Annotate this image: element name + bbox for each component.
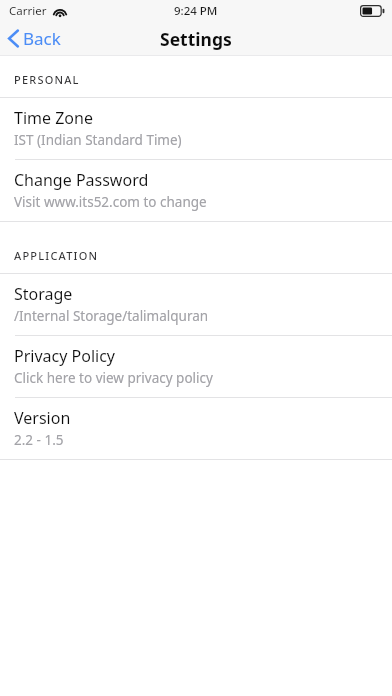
button[interactable]: Change Password	[0, 160, 392, 221]
staticText: IST (Indian Standard Time)	[14, 131, 182, 149]
staticText: 2.2 - 1.5	[14, 431, 64, 449]
staticText: Change Password	[14, 169, 149, 191]
button[interactable]: Back	[0, 22, 73, 55]
staticText: Visit www.its52.com to change	[14, 193, 207, 211]
staticText: Settings	[160, 27, 232, 51]
button[interactable]: Storage	[0, 274, 392, 335]
staticText: Privacy Policy	[14, 345, 115, 367]
staticText: Storage	[14, 283, 73, 305]
button[interactable]: Time Zone	[0, 98, 392, 159]
staticText: Click here to view privacy policy	[14, 369, 213, 387]
other: Battery	[360, 5, 385, 17]
button[interactable]: Privacy Policy	[0, 336, 392, 397]
staticText: Time Zone	[14, 107, 93, 129]
staticText: Carrier	[9, 3, 47, 19]
other: Back	[8, 29, 19, 48]
staticText: Version	[14, 407, 71, 429]
staticText: PERSONAL	[14, 72, 80, 87]
staticText: /Internal Storage/talimalquran	[14, 307, 209, 325]
staticText: Back	[23, 27, 61, 50]
staticText: 9:24 PM	[174, 3, 218, 19]
button[interactable]: Version	[0, 398, 392, 459]
staticText: APPLICATION	[14, 248, 99, 263]
